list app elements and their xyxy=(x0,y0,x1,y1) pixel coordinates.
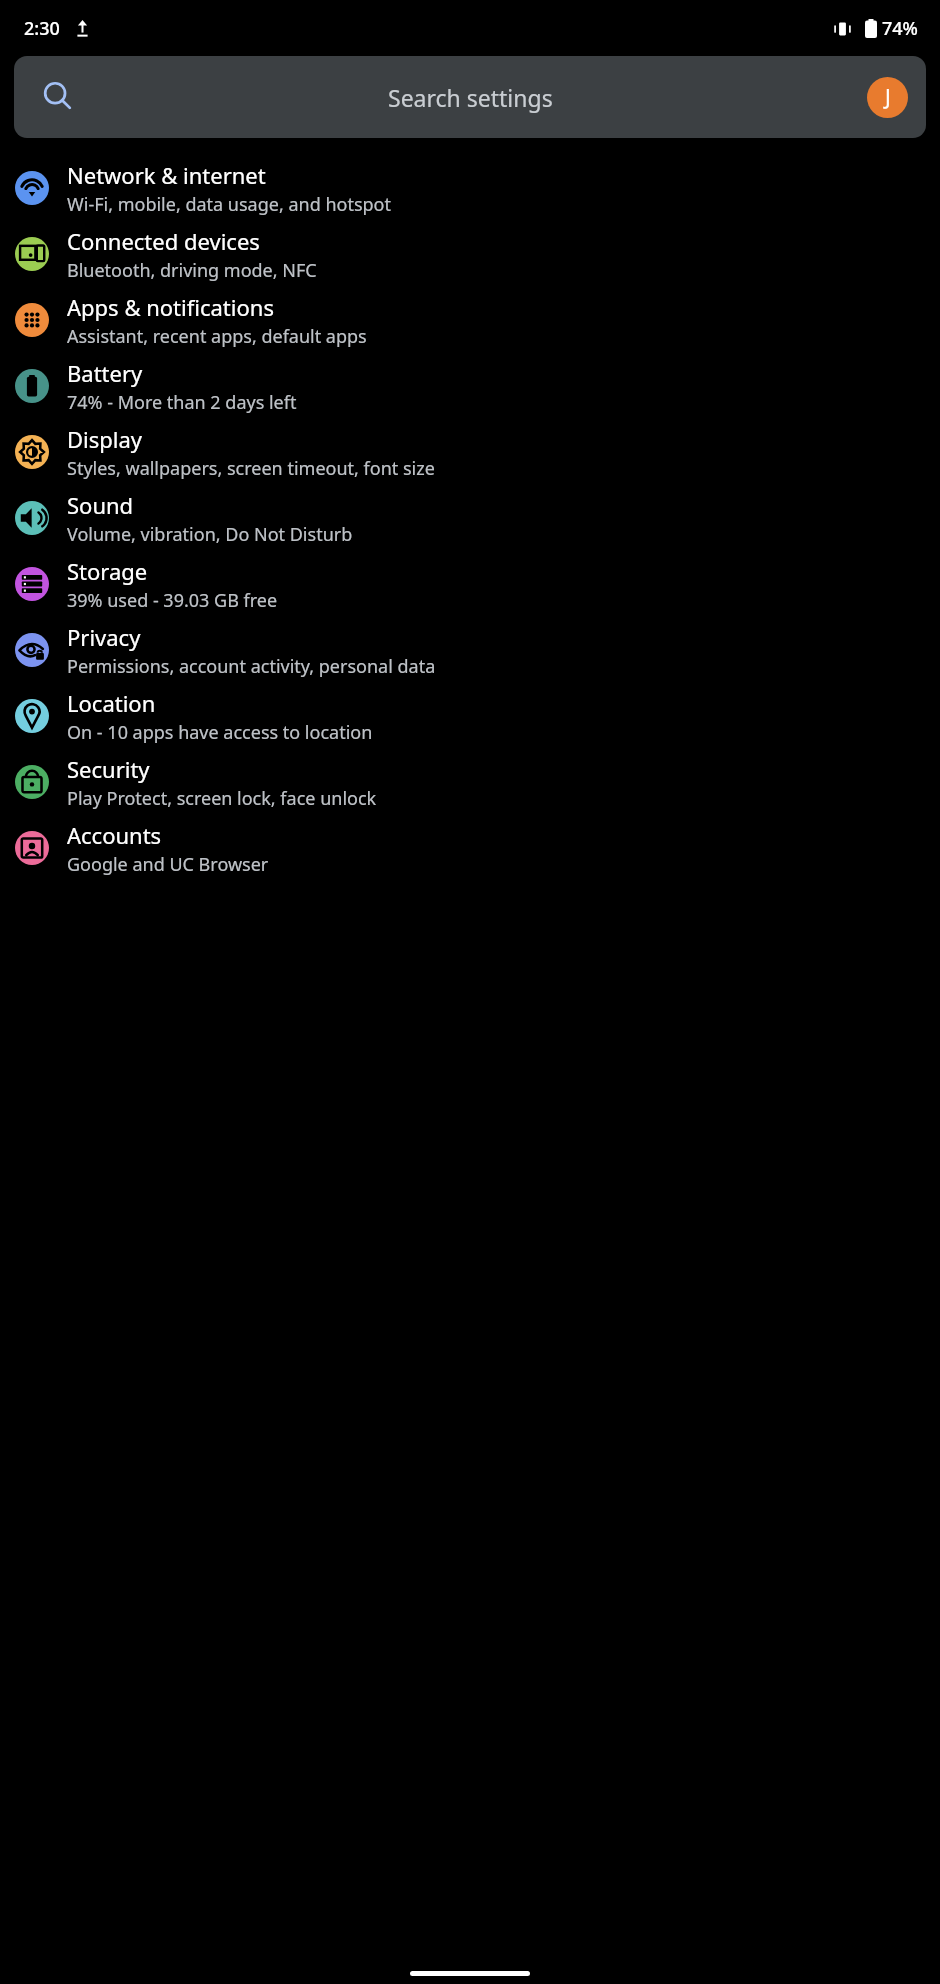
button[interactable]: Privacy xyxy=(0,617,940,683)
staticText: J xyxy=(885,83,891,112)
staticText: Security xyxy=(67,754,150,784)
staticText: Google and UC Browser xyxy=(67,852,269,877)
staticText: Permissions, account activity, personal … xyxy=(67,654,436,679)
staticText: 74% xyxy=(882,16,918,41)
staticText: Volume, vibration, Do Not Disturb xyxy=(67,522,353,547)
staticText: Sound xyxy=(67,490,134,520)
staticText: Location xyxy=(67,688,156,718)
button[interactable]: Apps & notifications xyxy=(0,287,940,353)
staticText: On - 10 apps have access to location xyxy=(67,720,373,745)
button[interactable]: Display xyxy=(0,419,940,485)
button[interactable]: Security xyxy=(0,749,940,815)
staticText: Apps & notifications xyxy=(67,292,274,322)
staticText: Network & internet xyxy=(67,160,266,190)
button[interactable]: Location xyxy=(0,683,940,749)
staticText: 74% - More than 2 days left xyxy=(67,390,297,415)
staticText: 2:30 xyxy=(24,16,60,41)
staticText: Styles, wallpapers, screen timeout, font… xyxy=(67,456,435,481)
staticText: Bluetooth, driving mode, NFC xyxy=(67,258,317,283)
button[interactable]: Sound xyxy=(0,485,940,551)
staticText: Assistant, recent apps, default apps xyxy=(67,324,367,349)
staticText: Play Protect, screen lock, face unlock xyxy=(67,786,377,811)
button[interactable]: Network & internet xyxy=(0,155,940,221)
staticText: Display xyxy=(67,424,143,454)
button[interactable]: Accounts xyxy=(0,815,940,881)
staticText: Wi-Fi, mobile, data usage, and hotspot xyxy=(67,192,391,217)
staticText: Accounts xyxy=(67,820,162,850)
staticText: Storage xyxy=(67,556,148,586)
button[interactable]: Connected devices xyxy=(0,221,940,287)
button[interactable]: Search settings xyxy=(14,56,926,138)
button[interactable]: Battery xyxy=(0,353,940,419)
staticText: Privacy xyxy=(67,622,141,652)
staticText: Connected devices xyxy=(67,226,260,256)
staticText: 39% used - 39.03 GB free xyxy=(67,588,278,613)
staticText: Search settings xyxy=(388,82,553,113)
button[interactable]: Account xyxy=(867,77,908,118)
button[interactable]: Storage xyxy=(0,551,940,617)
staticText: Battery xyxy=(67,358,143,388)
